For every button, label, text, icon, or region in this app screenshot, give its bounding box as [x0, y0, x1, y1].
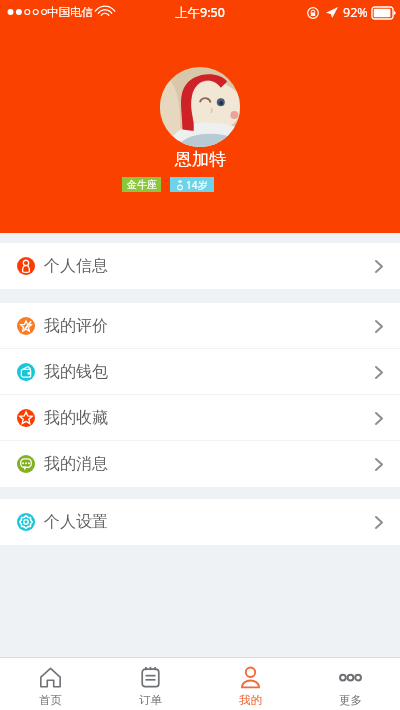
button[interactable]: 我的评价 — [0, 303, 400, 349]
staticText: 订单 — [139, 693, 162, 707]
staticText: 我的评价 — [44, 316, 108, 336]
button[interactable]: 订单 — [100, 658, 200, 710]
staticText: 个人信息 — [44, 256, 108, 276]
staticText: 14岁 — [186, 178, 208, 192]
staticText: 我的收藏 — [44, 408, 108, 428]
staticText: 恩加特 — [175, 149, 226, 170]
staticText: 92% — [343, 4, 368, 21]
button[interactable]: 我的 — [200, 658, 300, 710]
button[interactable]: 我的收藏 — [0, 395, 400, 441]
staticText: 个人设置 — [44, 512, 108, 532]
staticText: 我的 — [239, 693, 262, 707]
button[interactable]: 个人设置 — [0, 499, 400, 545]
staticText: 我的消息 — [44, 454, 108, 474]
button[interactable]: 更多 — [300, 658, 400, 710]
staticText: 金牛座 — [127, 178, 157, 191]
button[interactable]: 我的消息 — [0, 441, 400, 487]
staticText: 更多 — [339, 693, 362, 707]
staticText: 首页 — [39, 693, 62, 707]
button[interactable]: 我的钱包 — [0, 349, 400, 395]
button[interactable]: 首页 — [0, 658, 100, 710]
staticText: 上午9:50 — [175, 4, 225, 21]
staticText: 中国电信 — [47, 5, 93, 19]
button[interactable]: 个人信息 — [0, 243, 400, 289]
staticText: 我的钱包 — [44, 362, 108, 382]
